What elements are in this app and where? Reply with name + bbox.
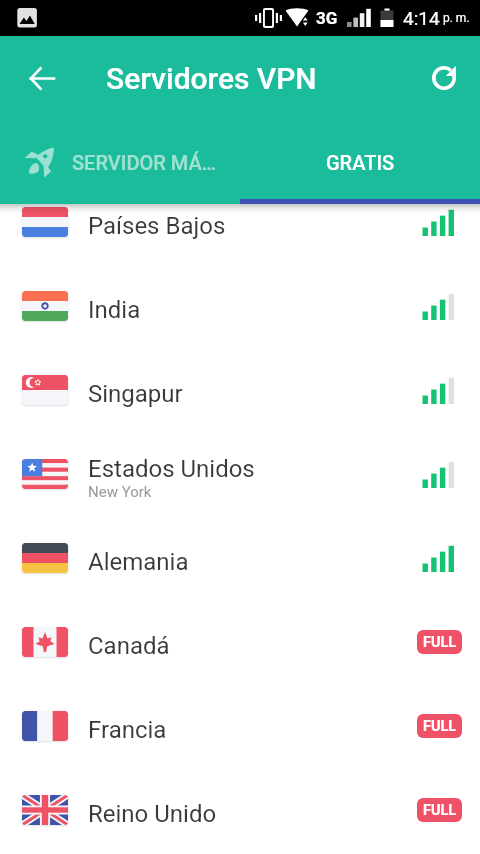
button[interactable]: Países Bajos: [0, 180, 480, 264]
button[interactable]: Singapur: [0, 348, 480, 432]
staticText: Canadá: [88, 632, 170, 660]
staticText: FULL: [423, 634, 457, 651]
button[interactable]: Estados Unidos: [0, 432, 480, 516]
staticText: FULL: [423, 718, 457, 735]
button[interactable]: Canadá: [0, 600, 480, 684]
button[interactable]: FULL: [417, 630, 462, 654]
button[interactable]: Alemania: [0, 516, 480, 600]
button[interactable]: GRATIS: [240, 120, 480, 204]
button[interactable]: SERVIDOR MÁ…: [0, 120, 240, 204]
staticText: SERVIDOR MÁ…: [72, 151, 216, 174]
staticText: Reino Unido: [88, 800, 217, 828]
button[interactable]: FULL: [417, 798, 462, 822]
button[interactable]: Refresh: [420, 54, 468, 102]
staticText: Singapur: [88, 380, 183, 408]
button[interactable]: Reino Unido: [0, 768, 480, 852]
button[interactable]: Back: [18, 54, 66, 102]
staticText: Estados Unidos: [88, 455, 255, 483]
staticText: Servidores VPN: [106, 61, 317, 96]
staticText: Alemania: [88, 548, 189, 576]
button[interactable]: India: [0, 264, 480, 348]
staticText: India: [88, 296, 141, 324]
staticText: p. m.: [440, 11, 470, 25]
staticText: FULL: [423, 802, 457, 819]
staticText: New York: [88, 483, 152, 501]
button[interactable]: Francia: [0, 684, 480, 768]
staticText: GRATIS: [326, 151, 395, 174]
staticText: Francia: [88, 716, 167, 744]
staticText: 3G: [316, 8, 338, 28]
button[interactable]: FULL: [417, 714, 462, 738]
staticText: 4:14: [403, 7, 440, 29]
staticText: Países Bajos: [88, 212, 226, 240]
